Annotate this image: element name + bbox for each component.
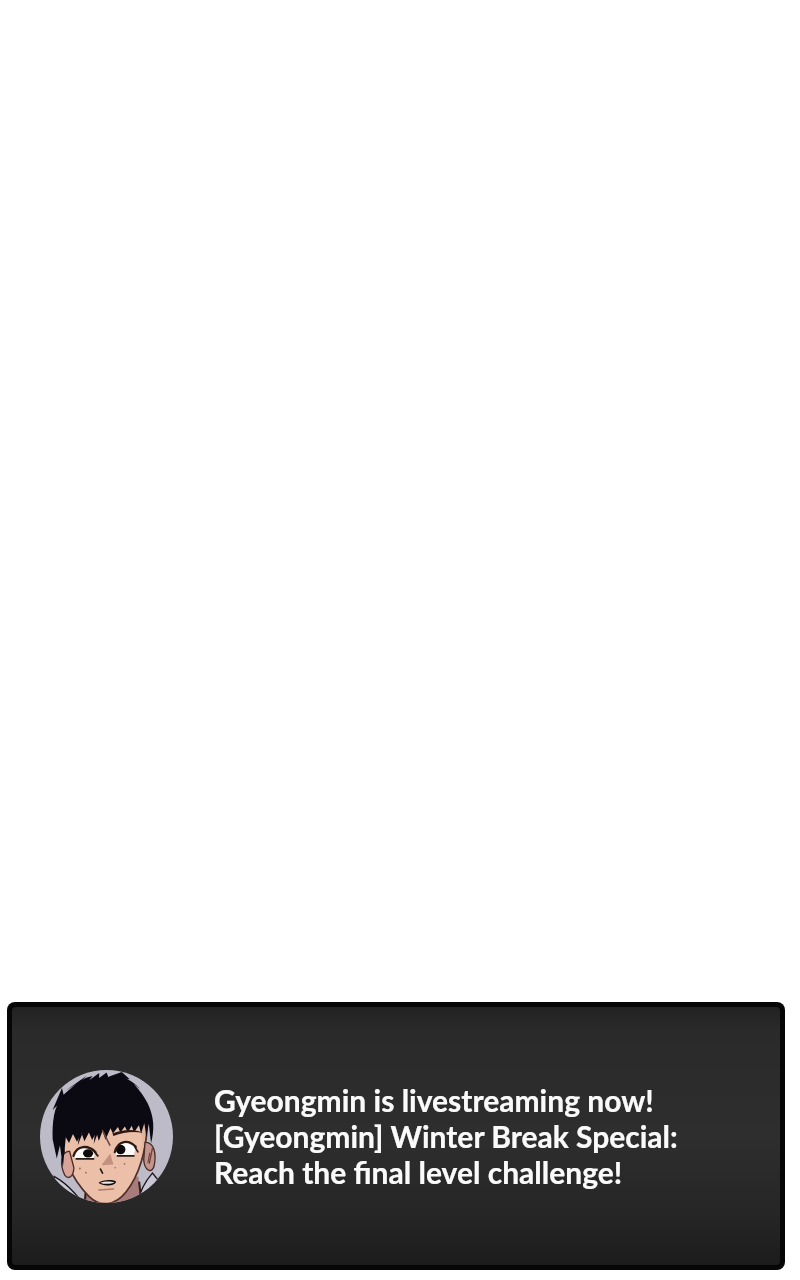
button[interactable]: Gyeongmin profile picture: [12, 1007, 780, 1265]
other: Gyeongmin profile picture: [40, 1070, 173, 1203]
staticText: Gyeongmin is livestreaming now!: [214, 1082, 654, 1118]
staticText: Reach the final level challenge!: [214, 1154, 623, 1190]
staticText: [Gyeongmin] Winter Break Special:: [214, 1118, 678, 1154]
